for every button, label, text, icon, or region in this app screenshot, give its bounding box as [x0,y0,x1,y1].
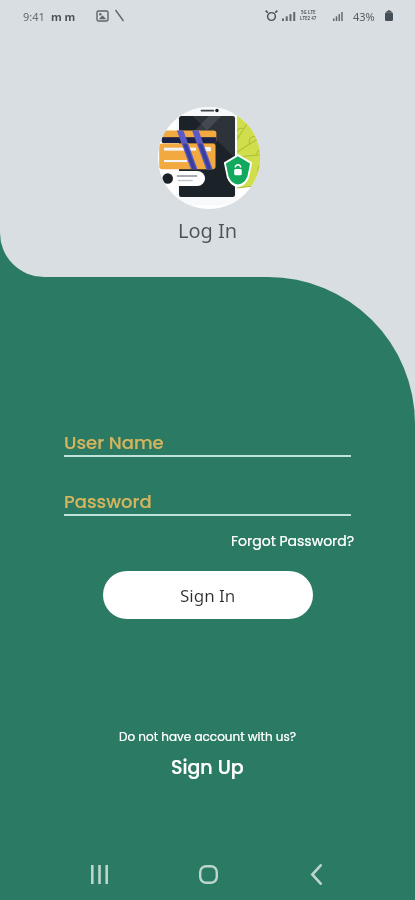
staticText: 9:41 [23,9,45,24]
staticText: User Name [64,430,164,455]
staticText: 43% [353,9,375,24]
staticText: m m [51,9,76,24]
staticText: LTE2 47 [300,15,317,21]
button[interactable]: Recent apps [77,852,122,897]
button[interactable]: Home [186,852,231,897]
button[interactable]: Back [294,852,339,897]
staticText: 5G LTE [301,9,316,15]
button[interactable]: Sign In [103,571,313,619]
button[interactable]: Forgot Password? [231,531,355,551]
staticText: Do not have account with us? [119,728,297,745]
button[interactable]: Sign Up [171,754,244,781]
staticText: Sign In [180,584,236,607]
staticText: Log In [178,217,238,244]
staticText: Password [64,489,152,514]
